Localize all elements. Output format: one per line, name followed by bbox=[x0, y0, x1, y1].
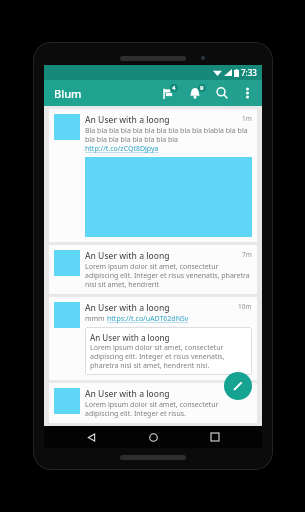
button[interactable]: An User with a loong bbox=[49, 383, 257, 423]
staticText: 10m bbox=[238, 302, 252, 311]
staticText: 7:33 bbox=[241, 67, 257, 78]
staticText: An User with a loong bbox=[85, 114, 242, 126]
staticText: mmm bbox=[85, 314, 107, 324]
staticText: 9 bbox=[200, 84, 204, 92]
button[interactable]: More options bbox=[238, 84, 256, 102]
staticText: Bla bla bla bla bla bla bla bla bla bla … bbox=[85, 126, 252, 144]
button[interactable]: An User with a loong bbox=[49, 109, 257, 242]
staticText: An User with a loong bbox=[90, 332, 170, 343]
staticText: Lorem ipsum dolor sit amet, consectetur … bbox=[85, 262, 252, 289]
staticText: http://t.co/zCQt8Djpya bbox=[85, 144, 159, 154]
button[interactable]: An User with a loong bbox=[85, 327, 252, 375]
button[interactable]: Recents bbox=[200, 426, 230, 448]
button[interactable]: An User with a loong bbox=[49, 245, 257, 294]
staticText: An User with a loong bbox=[85, 388, 252, 400]
button[interactable]: Messages bbox=[157, 82, 179, 104]
staticText: Lorem ipsum dolor sit amet, consectetur … bbox=[85, 400, 252, 418]
button[interactable]: Home bbox=[138, 426, 168, 448]
button[interactable]: Back bbox=[76, 426, 106, 448]
staticText: An User with a loong bbox=[85, 302, 238, 314]
staticText: Blum bbox=[54, 86, 82, 101]
button[interactable]: Search bbox=[211, 82, 233, 104]
staticText: Lorem ipsum dolor sit amet, consectetur … bbox=[90, 343, 247, 370]
button[interactable]: Notifications bbox=[184, 82, 206, 104]
staticText: 1m bbox=[242, 114, 252, 123]
staticText: An User with a loong bbox=[85, 250, 242, 262]
button[interactable]: Compose bbox=[224, 372, 252, 400]
button[interactable]: An User with a loong bbox=[49, 297, 257, 380]
staticText: https://t.co/uADT62dNSv bbox=[107, 314, 189, 324]
staticText: 4 bbox=[172, 84, 176, 92]
staticText: 7m bbox=[242, 250, 252, 259]
